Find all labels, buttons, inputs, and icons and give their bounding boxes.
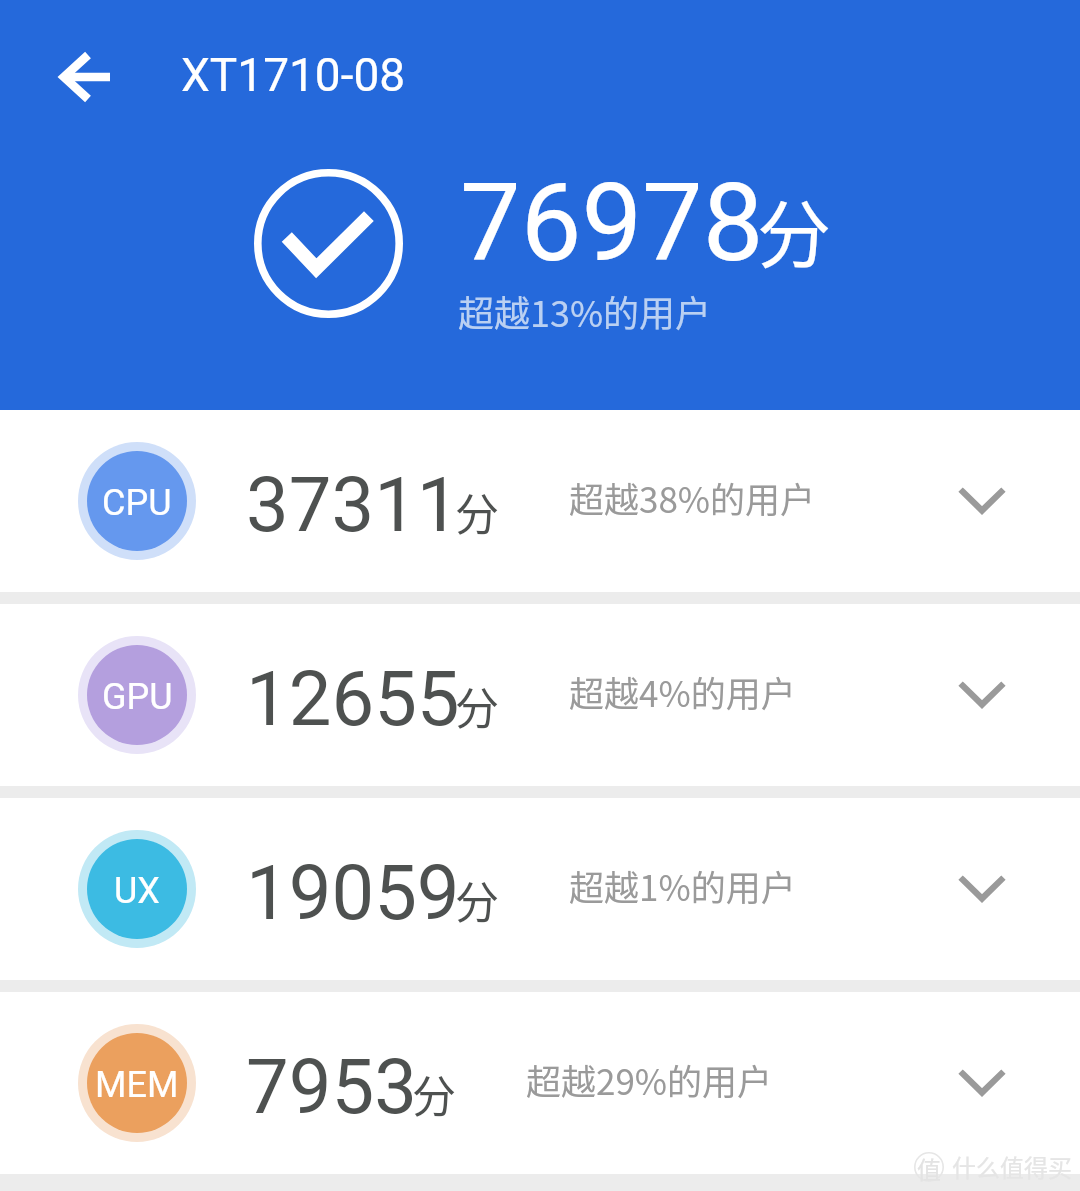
button[interactable]: GPU [0, 604, 1080, 786]
button[interactable]: CPU [0, 410, 1080, 592]
staticText: 37311 [246, 460, 460, 549]
button[interactable]: Expand MEM details [932, 1033, 1032, 1133]
staticText: 分 [757, 176, 831, 283]
staticText: 分 [412, 1062, 456, 1126]
staticText: 12655 [246, 654, 460, 743]
button[interactable]: Expand GPU details [932, 645, 1032, 745]
staticText: 分 [455, 868, 499, 932]
staticText: 超越38%的用户 [569, 472, 816, 523]
button[interactable]: MEM [0, 992, 1080, 1174]
button[interactable]: Expand CPU details [932, 451, 1032, 551]
staticText: 分 [455, 674, 499, 738]
staticText: 什么值得买 [952, 1149, 1072, 1184]
staticText: 超越4%的用户 [569, 666, 796, 717]
staticText: GPU [102, 676, 173, 718]
staticText: 超越29%的用户 [526, 1054, 773, 1105]
staticText: XT1710-08 [181, 48, 406, 102]
staticText: 超越1%的用户 [569, 860, 796, 911]
button[interactable]: Back [29, 24, 139, 130]
staticText: 7953 [246, 1042, 417, 1131]
staticText: CPU [102, 482, 172, 524]
staticText: 76978 [460, 160, 764, 287]
staticText: 分 [455, 480, 499, 544]
staticText: 超越13%的用户 [458, 285, 712, 337]
staticText: MEM [95, 1064, 179, 1106]
staticText: UX [114, 870, 160, 912]
staticText: 值 [917, 1151, 941, 1183]
staticText: 19059 [246, 848, 460, 937]
button[interactable]: UX [0, 798, 1080, 980]
button[interactable]: Expand UX details [932, 839, 1032, 939]
